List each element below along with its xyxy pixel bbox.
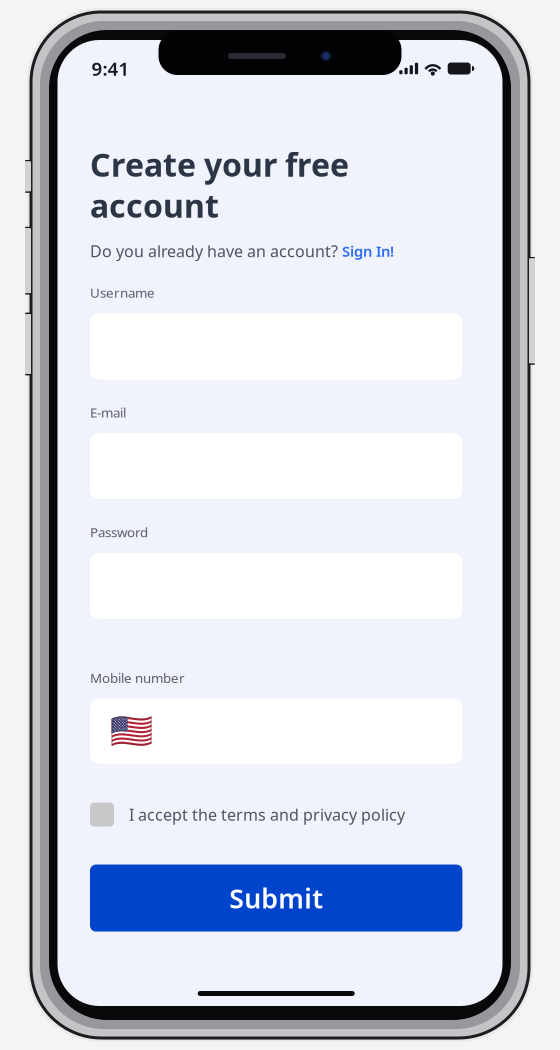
staticText: 🇺🇸	[110, 711, 153, 751]
staticText: account	[90, 184, 219, 226]
button[interactable]: Sign In!	[342, 241, 394, 261]
staticText: Mobile number	[90, 669, 185, 687]
button[interactable]: Mobile number, country United States	[90, 699, 462, 764]
staticText: I accept the terms and privacy policy	[129, 804, 405, 825]
staticText: Submit	[229, 880, 323, 916]
button[interactable]: Submit	[90, 865, 462, 932]
staticText: E-mail	[90, 403, 126, 421]
staticText: Sign In!	[342, 241, 394, 261]
staticText: 9:41	[91, 56, 129, 81]
staticText: Do you already have an account?	[90, 240, 338, 262]
staticText: Create your free	[90, 143, 349, 185]
staticText: Password	[90, 523, 148, 541]
staticText: Username	[90, 284, 155, 301]
button[interactable]: I accept the terms and privacy policy	[90, 803, 462, 827]
